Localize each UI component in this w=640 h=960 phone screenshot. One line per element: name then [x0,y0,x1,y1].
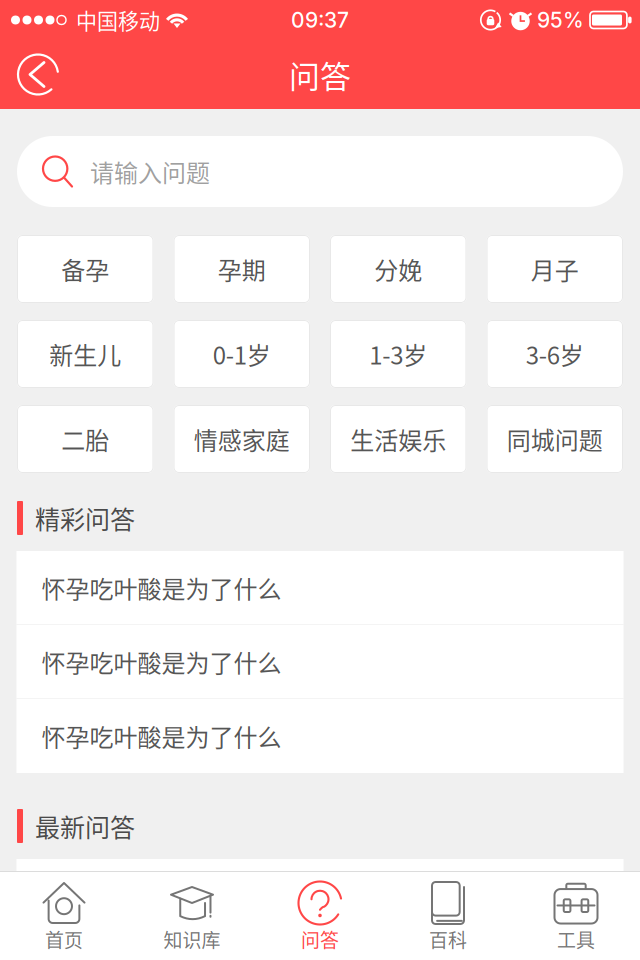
staticText: 09:37 [291,7,349,33]
staticText: 请输入问题 [90,154,210,189]
button[interactable]: 备孕 [17,235,153,303]
button[interactable]: 怀孕吃叶酸是为了什么 [16,933,623,960]
staticText: 1-3岁 [369,337,427,371]
staticText: 怀孕吃叶酸是为了什么 [41,719,281,753]
button[interactable]: 怀孕吃叶酸是为了什么 [16,625,623,699]
staticText: 备孕 [61,252,109,286]
staticText: 精彩问答 [35,500,135,536]
button[interactable]: 知识库 [128,871,256,960]
button[interactable]: 分娩 [330,235,466,303]
staticText: 中国移动 [76,5,160,35]
button[interactable]: 同城问题 [486,405,623,473]
button[interactable]: 3-6岁 [486,320,623,388]
staticText: 最新问答 [35,808,135,844]
staticText: 问答 [301,925,339,953]
button[interactable]: 问答 [256,871,384,960]
staticText: 0-1岁 [213,337,271,371]
button[interactable]: 怀孕吃叶酸是为了什么 [16,551,623,625]
button[interactable]: 月子 [486,235,623,303]
staticText: 3-6岁 [526,337,584,371]
staticText: 情感家庭 [194,422,290,456]
staticText: 怀孕吃叶酸是为了什么 [41,878,281,913]
button[interactable]: 百科 [384,871,512,960]
staticText: 新生儿 [49,337,121,371]
button[interactable]: Back [8,44,68,104]
button[interactable]: 生活娱乐 [330,405,466,473]
staticText: 孕期 [218,252,266,286]
button[interactable]: 孕期 [173,235,310,303]
button[interactable]: 情感家庭 [173,405,310,473]
button[interactable]: 怀孕吃叶酸是为了什么 [16,859,623,933]
button[interactable]: 1-3岁 [330,320,466,388]
button[interactable]: 首页 [0,871,128,960]
staticText: 知识库 [163,925,220,953]
button[interactable]: 怀孕吃叶酸是为了什么 [16,699,623,773]
staticText: 月子 [531,252,579,286]
button[interactable]: 0-1岁 [173,320,310,388]
staticText: 95% [537,7,584,33]
staticText: 生活娱乐 [350,422,446,456]
staticText: 百科 [429,925,467,953]
staticText: 怀孕吃叶酸是为了什么 [41,644,281,679]
staticText: 怀孕吃叶酸是为了什么 [41,570,281,605]
button[interactable]: 请输入问题 [17,136,623,207]
button[interactable]: 二胎 [17,405,153,473]
staticText: 分娩 [374,252,422,286]
staticText: 工具 [557,925,595,953]
button[interactable]: 新生儿 [17,320,153,388]
staticText: 同城问题 [507,422,603,456]
staticText: 问答 [289,52,351,97]
staticText: 二胎 [61,422,109,456]
staticText: 首页 [45,925,83,953]
button[interactable]: 工具 [512,871,640,960]
